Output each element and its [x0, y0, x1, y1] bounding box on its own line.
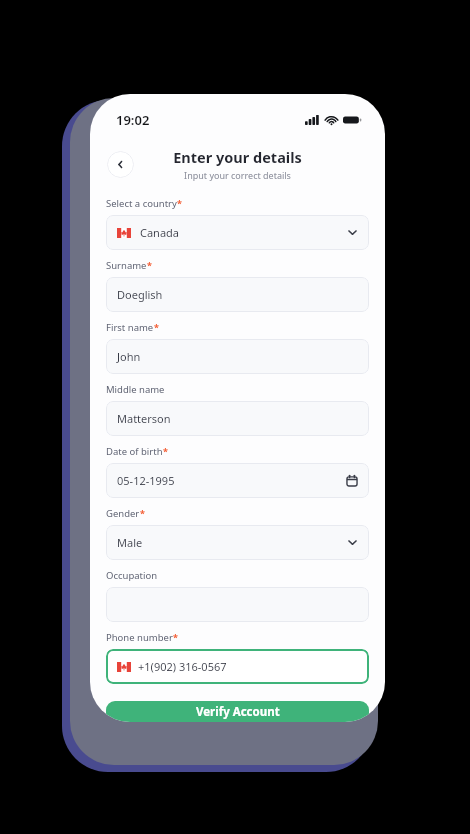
staticText: Matterson [117, 411, 171, 426]
staticText: First name [106, 321, 154, 334]
button[interactable]: Canada [106, 215, 369, 250]
button[interactable]: John [106, 339, 369, 374]
staticText: Male [117, 535, 143, 550]
staticText: Occupation [106, 569, 158, 582]
staticText: Doeglish [117, 287, 163, 302]
staticText: Middle name [106, 383, 165, 396]
staticText: Select a country [106, 197, 177, 210]
staticText: +1(902) 316-0567 [138, 659, 227, 674]
button[interactable]: Matterson [106, 401, 369, 436]
staticText: 19:02 [116, 111, 150, 129]
staticText: Enter your details [173, 147, 302, 167]
staticText: Input your correct details [184, 169, 291, 181]
staticText: Verify Account [196, 704, 280, 720]
button[interactable] [106, 587, 369, 622]
staticText: Phone number [106, 631, 173, 644]
button[interactable]: Verify Account [106, 701, 369, 722]
staticText: * [163, 445, 168, 457]
staticText: Gender [106, 507, 140, 520]
button[interactable]: +1(902) 316-0567 [106, 649, 369, 684]
staticText: Date of birth [106, 445, 163, 458]
button[interactable]: Male [106, 525, 369, 560]
staticText: John [117, 349, 141, 364]
staticText: * [147, 259, 152, 271]
button[interactable]: Doeglish [106, 277, 369, 312]
staticText: * [154, 321, 159, 333]
button[interactable]: 05-12-1995 [106, 463, 369, 498]
staticText: Canada [140, 225, 180, 240]
staticText: * [173, 631, 178, 643]
button[interactable]: Back [107, 151, 134, 178]
staticText: 05-12-1995 [117, 473, 175, 488]
staticText: * [140, 507, 145, 519]
staticText: * [177, 197, 182, 209]
staticText: Surname [106, 259, 147, 272]
